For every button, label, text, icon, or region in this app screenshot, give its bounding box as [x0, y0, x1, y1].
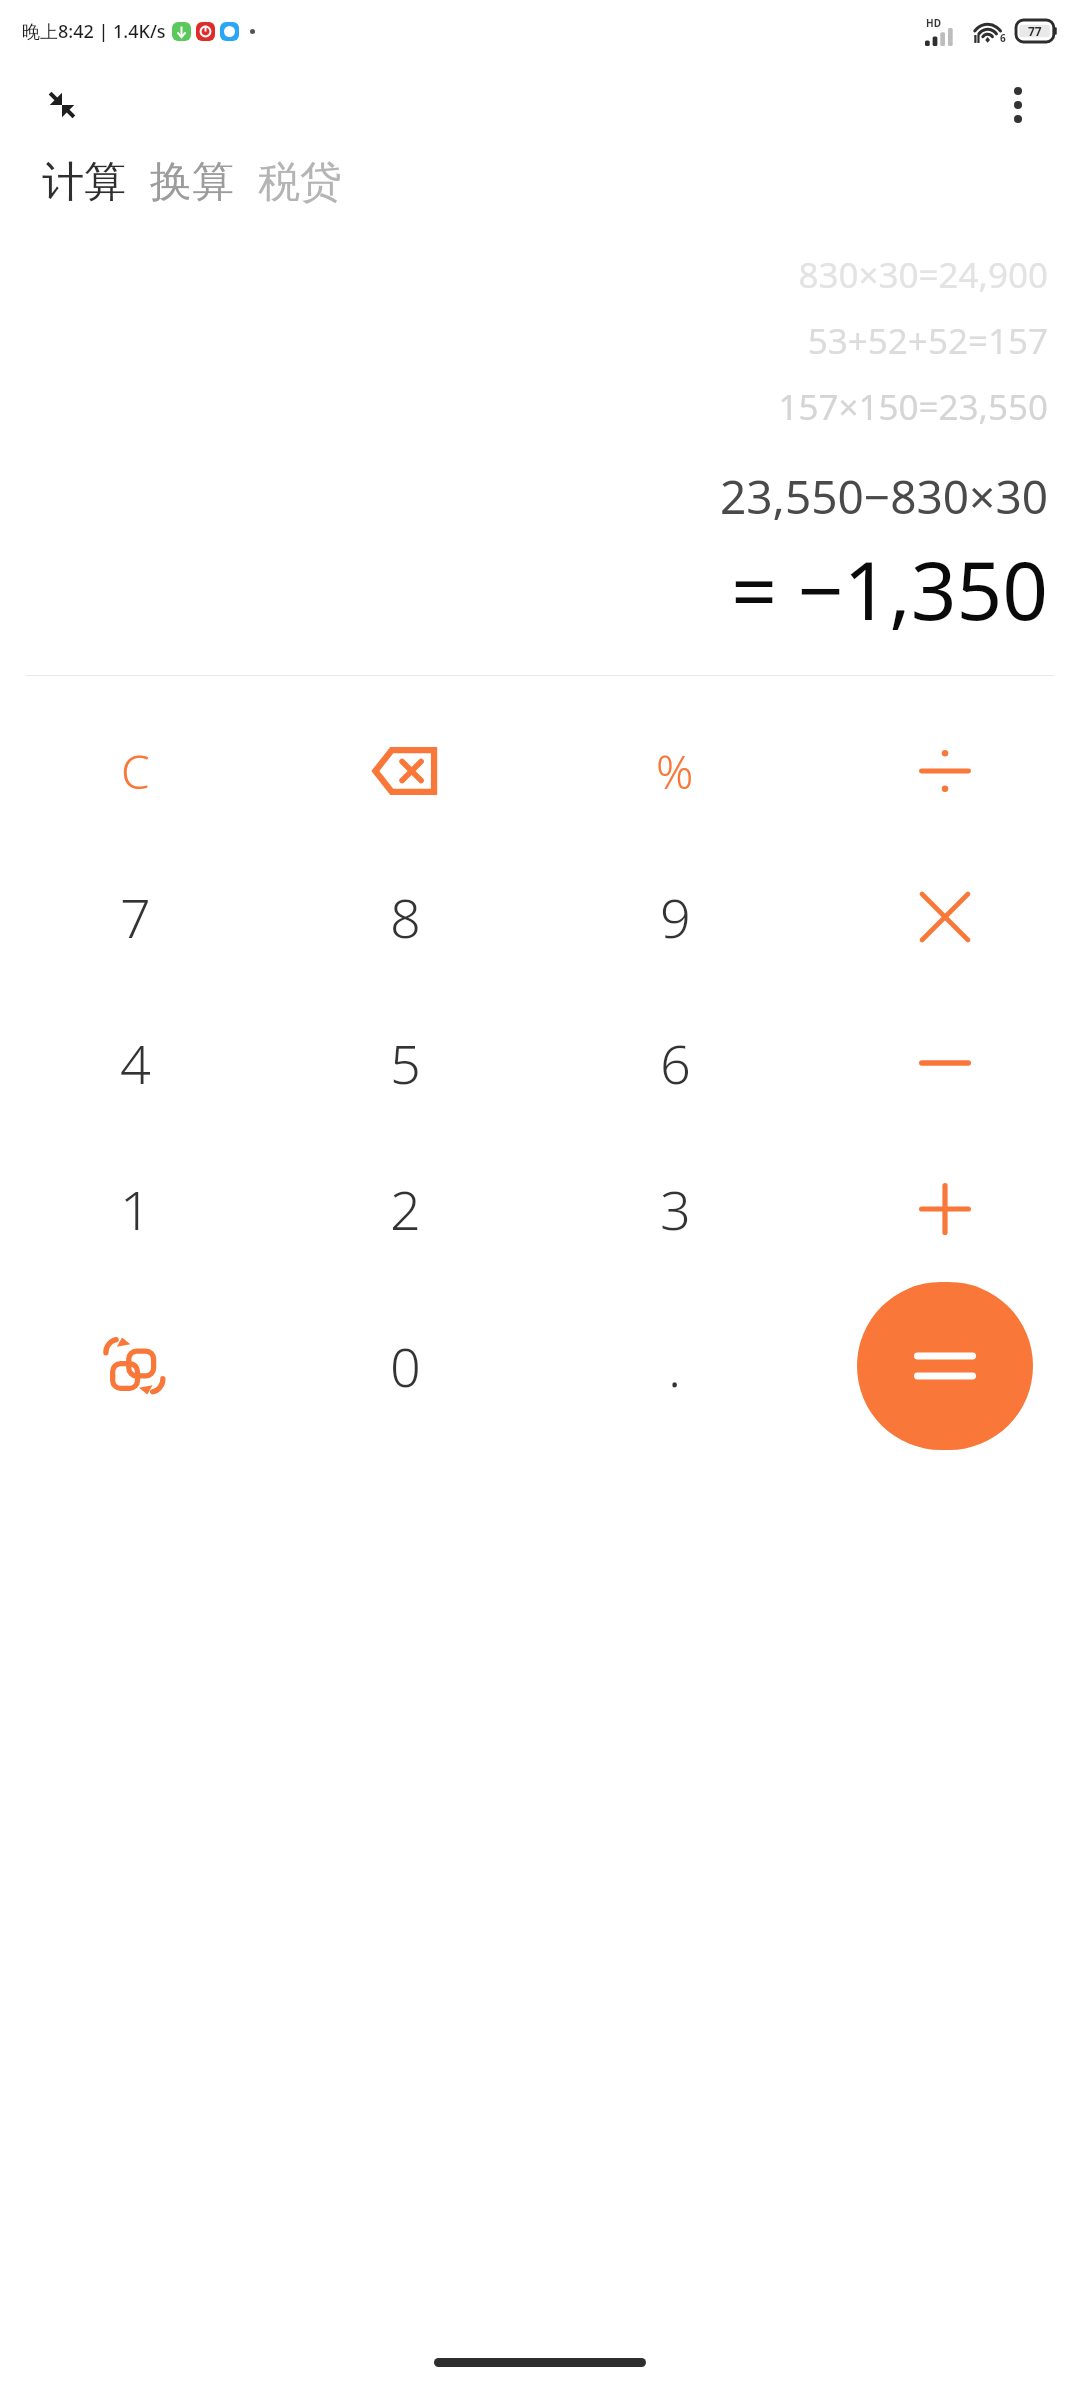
button[interactable]: . — [540, 1282, 810, 1450]
button[interactable]: 6 — [540, 990, 810, 1136]
button[interactable]: 4 — [0, 990, 270, 1136]
button[interactable]: 税贷 — [246, 148, 354, 217]
staticText: 8 — [390, 880, 421, 954]
button[interactable]: Clear — [0, 698, 270, 844]
staticText: 6 — [660, 1026, 691, 1100]
staticText: 税贷 — [258, 156, 342, 209]
staticText: 5 — [390, 1026, 421, 1100]
button[interactable]: 1 — [0, 1136, 270, 1282]
staticText: 0 — [390, 1329, 421, 1403]
button[interactable]: 计算 — [30, 148, 138, 217]
staticText: 9 — [660, 880, 691, 954]
button[interactable]: Percent — [540, 698, 810, 844]
staticText: 计算 — [42, 156, 126, 209]
staticText: 换算 — [150, 156, 234, 209]
button[interactable]: Minus — [810, 990, 1080, 1136]
button[interactable]: 2 — [270, 1136, 540, 1282]
staticText: 1 — [120, 1172, 151, 1246]
staticText: 77 — [1028, 23, 1042, 39]
staticText: 7 — [120, 880, 151, 954]
button[interactable]: 9 — [540, 844, 810, 990]
button[interactable]: Multiply — [810, 844, 1080, 990]
button[interactable]: 8 — [270, 844, 540, 990]
button[interactable]: 5 — [270, 990, 540, 1136]
staticText: HD — [926, 16, 941, 30]
button[interactable]: Divide — [810, 698, 1080, 844]
button[interactable]: More options — [990, 77, 1046, 133]
staticText: 6 — [1000, 31, 1006, 45]
staticText: 3 — [660, 1172, 691, 1246]
button[interactable]: Convert — [0, 1282, 270, 1450]
staticText: 4 — [120, 1026, 151, 1100]
staticText: 53+52+52=157 — [807, 317, 1048, 365]
staticText: 2 — [390, 1172, 421, 1246]
button[interactable]: 3 — [540, 1136, 810, 1282]
button[interactable]: Plus — [810, 1136, 1080, 1282]
button[interactable]: Equals — [857, 1282, 1033, 1450]
staticText: 晚上8:42 | 1.4K/s — [22, 19, 166, 44]
staticText: % — [656, 740, 694, 803]
staticText: C — [121, 740, 150, 803]
staticText: = −1,350 — [731, 534, 1048, 643]
button[interactable]: 0 — [270, 1282, 540, 1450]
staticText: . — [668, 1329, 682, 1403]
staticText: 157×150=23,550 — [778, 383, 1048, 431]
button[interactable]: 换算 — [138, 148, 246, 217]
staticText: 23,550−830×30 — [719, 465, 1048, 528]
button[interactable]: 7 — [0, 844, 270, 990]
staticText: 830×30=24,900 — [798, 251, 1048, 299]
button[interactable]: Collapse — [34, 77, 90, 133]
button[interactable]: Backspace — [270, 698, 540, 844]
